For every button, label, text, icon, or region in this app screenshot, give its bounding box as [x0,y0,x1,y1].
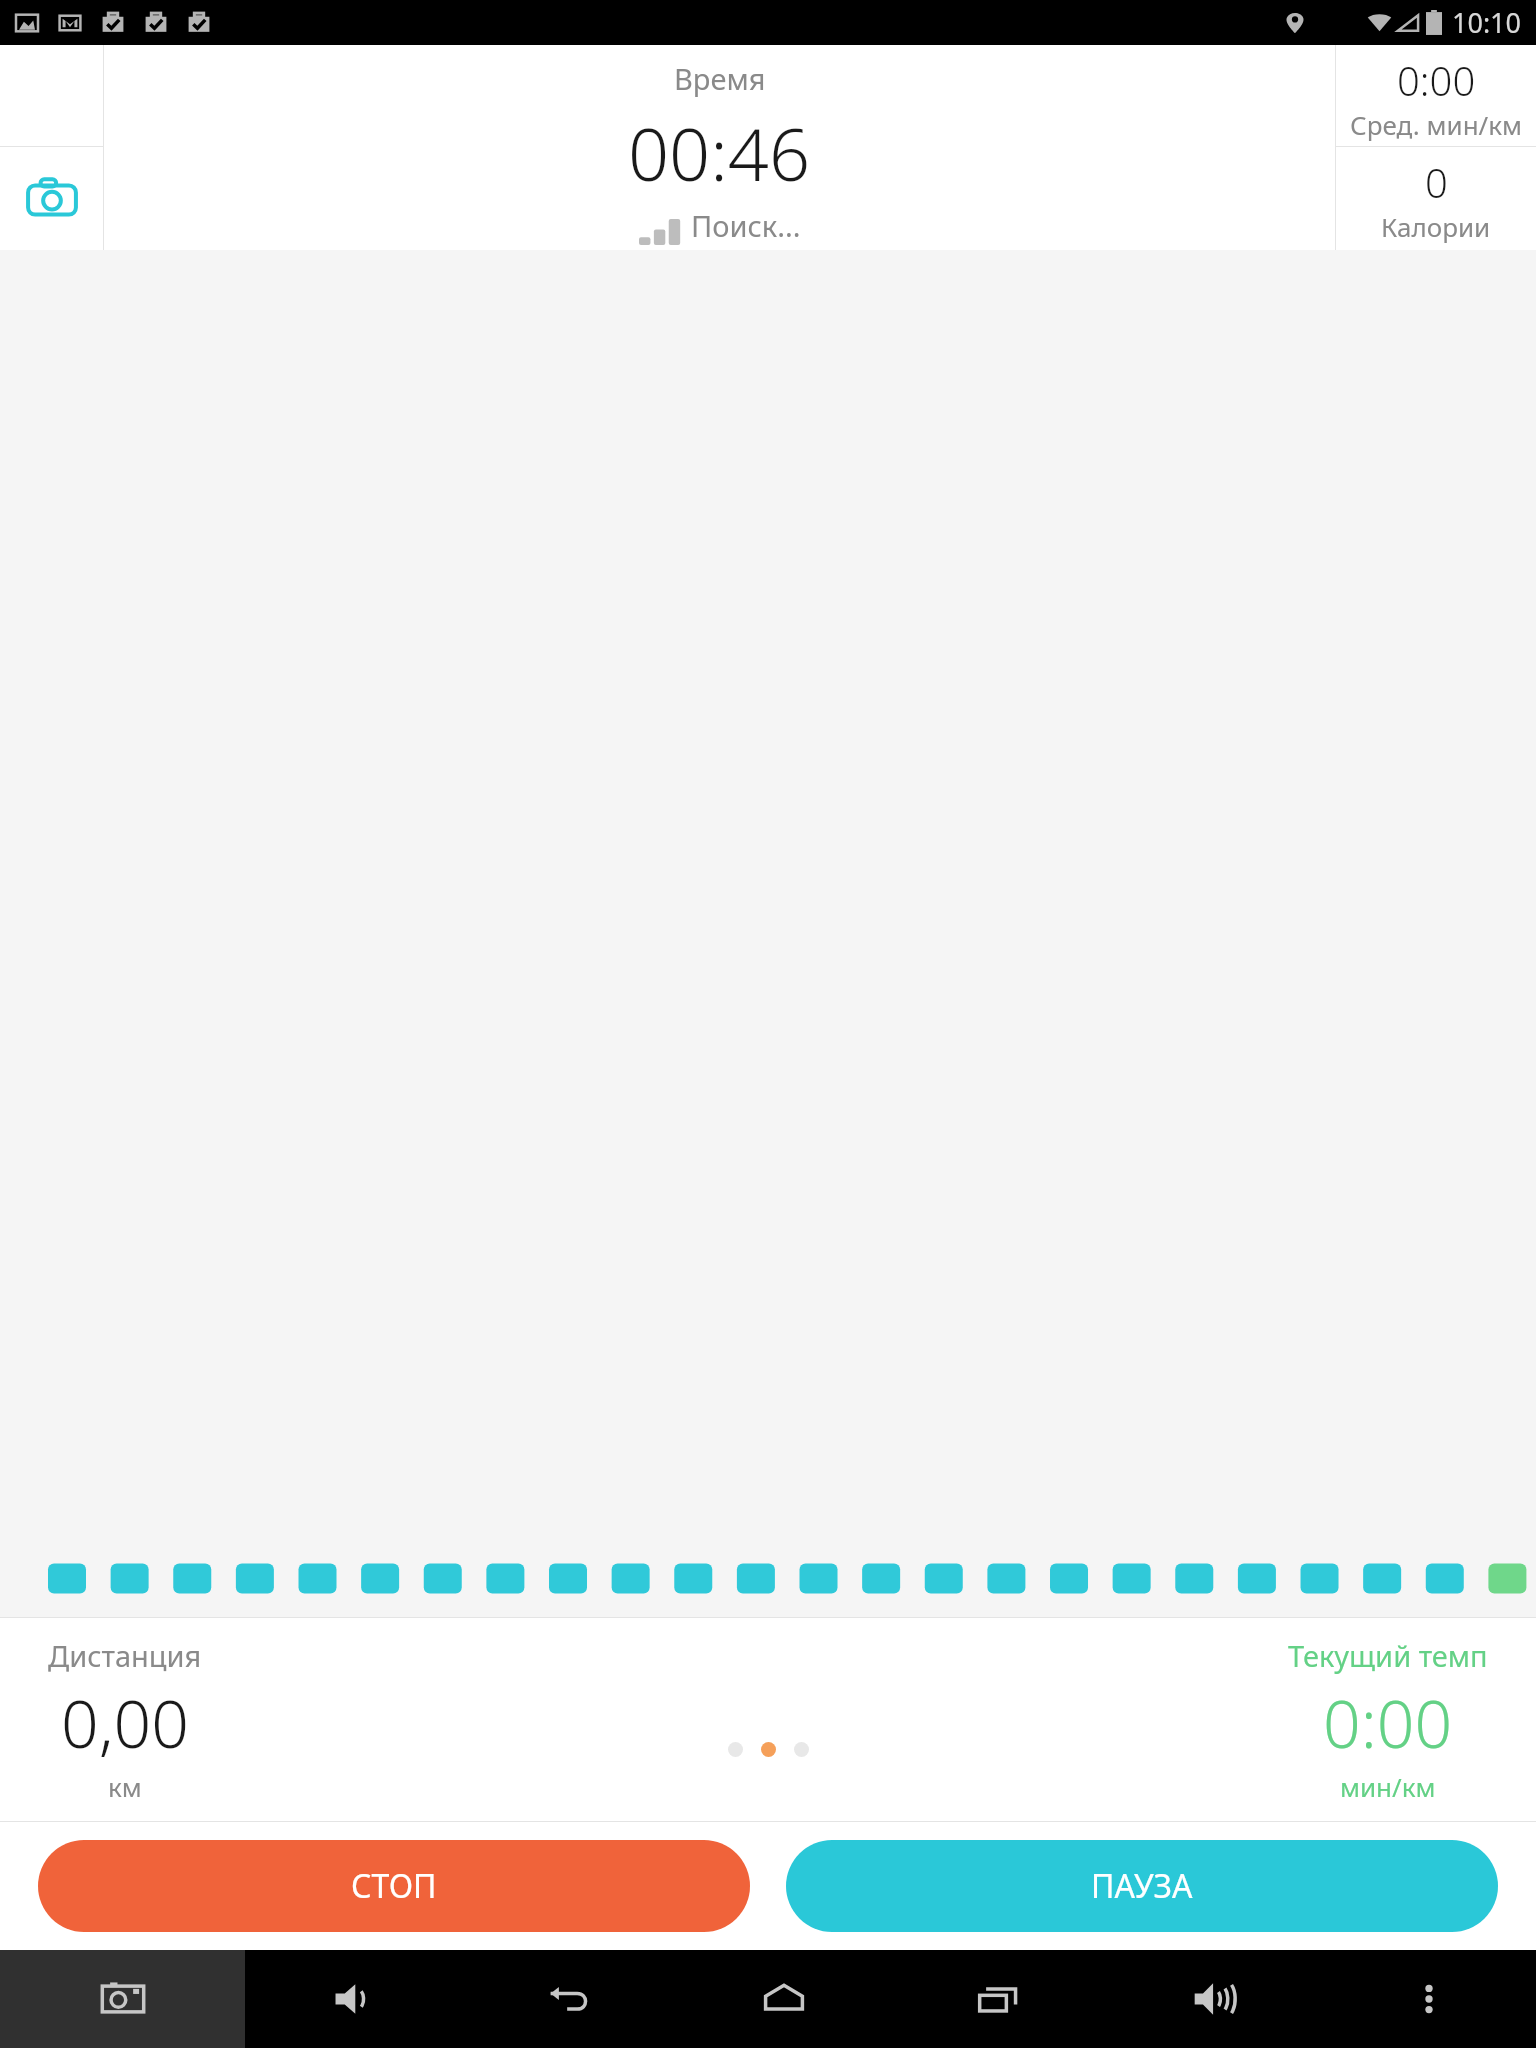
staticText: км [108,1769,142,1804]
staticText: Текущий темп [1288,1636,1488,1675]
staticText: Сред. мин/км [1350,107,1523,142]
button[interactable]: Volume down [245,1950,461,2048]
staticText: 10:10 [1452,4,1522,41]
staticText: Калории [1381,209,1491,244]
staticText: Поиск... [691,206,801,245]
button[interactable]: More options [1321,1950,1536,2048]
staticText: 0 [1425,155,1448,209]
button[interactable]: Camera [0,1950,245,2048]
staticText: 0,00 [61,1677,189,1767]
staticText: 0:00 [1323,1677,1453,1767]
button[interactable]: ПАУЗА [786,1840,1498,1932]
button[interactable]: Время [104,45,1335,250]
button[interactable]: Volume up [1106,1950,1321,2048]
staticText: 00:46 [628,104,811,202]
staticText: Время [674,59,766,98]
staticText: Дистанция [48,1636,202,1675]
staticText: мин/км [1340,1769,1436,1804]
button[interactable]: СТОП [38,1840,750,1932]
staticText: 0:00 [1397,53,1476,107]
button[interactable]: Recents [891,1950,1106,2048]
staticText: ПАУЗА [1091,1864,1193,1908]
button[interactable]: Camera [0,147,103,250]
staticText: СТОП [351,1864,437,1908]
button[interactable]: Back [461,1950,676,2048]
button[interactable]: 0 [1336,147,1536,250]
button[interactable]: 0:00 [1336,45,1536,146]
button[interactable]: Home [676,1950,891,2048]
button[interactable]: Текущий темп [1288,1636,1488,1804]
button[interactable]: Дистанция [48,1636,202,1804]
